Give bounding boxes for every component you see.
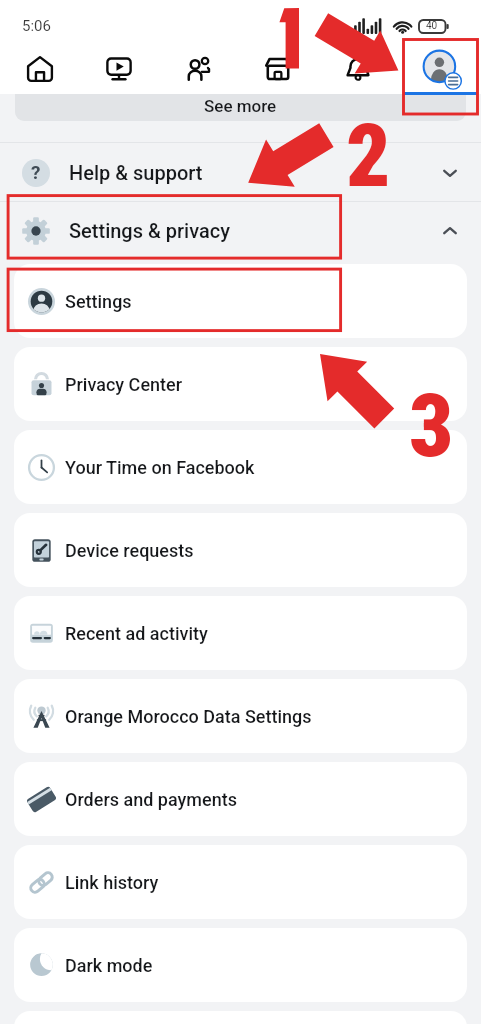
staticText: ? (31, 161, 41, 183)
button[interactable]: ? (0, 143, 481, 202)
staticText: Link history (65, 872, 159, 893)
staticText: Your Time on Facebook (65, 457, 255, 478)
button[interactable]: Recent ad activity (14, 596, 467, 670)
button[interactable]: Link history (14, 845, 467, 919)
staticText: Help & support (69, 161, 203, 184)
button[interactable]: Menu (404, 45, 478, 95)
button[interactable]: Orange Morocco Data Settings (14, 679, 467, 753)
staticText: Settings & privacy (69, 219, 230, 242)
staticText: Device requests (65, 540, 194, 561)
button[interactable]: Notifications (320, 45, 396, 93)
button[interactable]: Marketplace (240, 45, 316, 93)
button[interactable]: Dark mode (14, 928, 467, 1002)
staticText: 5:06 (22, 17, 51, 35)
button[interactable]: Your Time on Facebook (14, 430, 467, 504)
button[interactable]: Video (81, 45, 157, 93)
staticText: Orders and payments (65, 789, 237, 810)
staticText: See more (204, 96, 277, 116)
staticText: 3 (409, 375, 454, 477)
button[interactable]: Orders and payments (14, 762, 467, 836)
staticText: 40 (426, 20, 438, 32)
button[interactable]: Device requests (14, 513, 467, 587)
staticText: Orange Morocco Data Settings (65, 706, 312, 727)
button[interactable]: Settings & privacy (0, 201, 481, 260)
staticText: Settings (65, 291, 132, 312)
button[interactable]: Friends (161, 45, 237, 93)
staticText: Recent ad activity (65, 623, 208, 644)
staticText: Dark mode (65, 955, 153, 976)
button[interactable]: Settings (14, 264, 467, 338)
staticText: 2 (346, 105, 391, 207)
button[interactable]: Home (2, 45, 78, 93)
staticText: Privacy Center (65, 374, 183, 395)
button[interactable]: Privacy Center (14, 347, 467, 421)
button[interactable]: See more (15, 94, 466, 121)
